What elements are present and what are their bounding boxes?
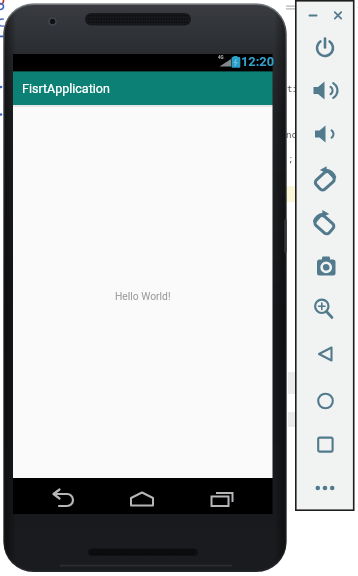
button[interactable] [330,7,347,24]
staticText: ti [287,82,295,94]
button[interactable] [307,427,343,463]
button[interactable] [304,7,321,24]
button[interactable] [307,116,343,152]
button[interactable] [307,249,343,285]
button[interactable] [307,160,343,196]
button[interactable] [307,30,343,66]
button[interactable] [307,204,343,240]
button[interactable] [307,470,343,506]
staticText: Hello World! [115,290,171,302]
button[interactable] [207,485,237,513]
button[interactable] [307,383,343,419]
staticText: ; [288,152,294,164]
button[interactable] [307,336,343,372]
button[interactable] [307,73,343,109]
staticText: 12:20 [241,54,274,69]
staticText: nc [286,128,295,140]
button[interactable] [307,291,343,327]
button[interactable] [48,485,78,513]
staticText: FisrtApplication [22,81,110,96]
button[interactable] [127,485,157,513]
staticText: 4G [218,55,224,60]
